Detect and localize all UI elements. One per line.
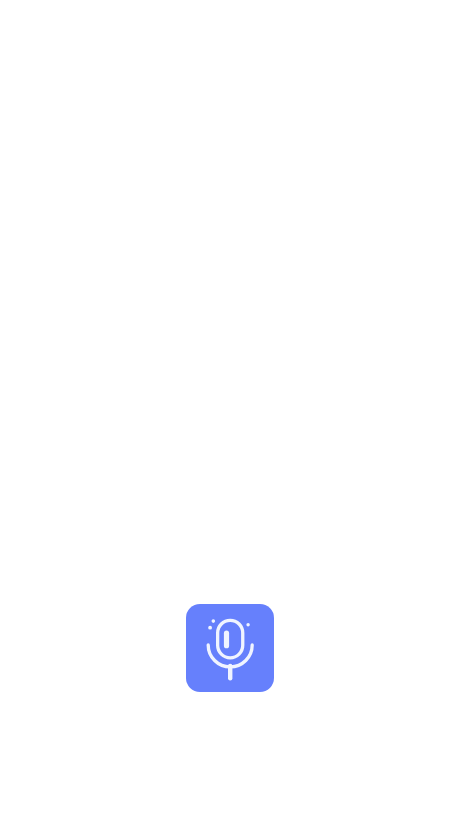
button[interactable]: Voice recorder [186, 604, 274, 692]
